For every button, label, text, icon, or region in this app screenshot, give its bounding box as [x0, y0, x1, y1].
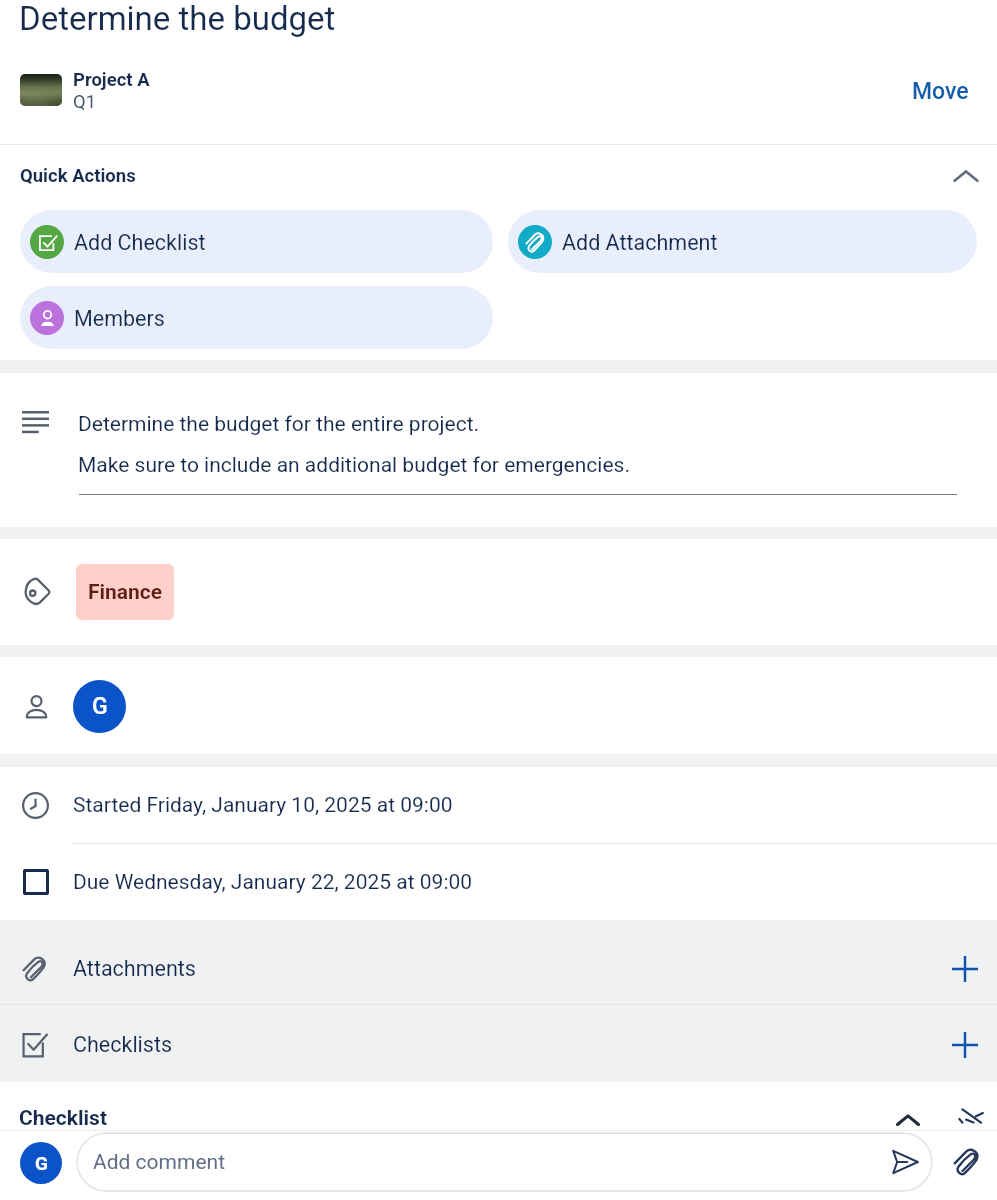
button[interactable]: Attachments — [0, 920, 997, 1004]
staticText: Quick Actions — [20, 165, 136, 187]
button[interactable]: Add comment — [76, 1132, 933, 1192]
staticText: Add Attachment — [562, 230, 718, 255]
staticText: Add comment — [93, 1150, 225, 1175]
button[interactable]: Checklists — [0, 1005, 997, 1082]
staticText: G — [35, 1152, 48, 1174]
staticText: Add Checklist — [74, 230, 206, 255]
button[interactable]: Add Attachment — [508, 210, 977, 273]
staticText: Checklists — [73, 1032, 173, 1057]
button[interactable]: G — [73, 680, 126, 733]
button[interactable]: Add Checklist — [20, 210, 493, 273]
button[interactable]: Send — [881, 1138, 929, 1186]
staticText: Due Wednesday, January 22, 2025 at 09:00 — [73, 870, 473, 895]
button[interactable]: Collapse checklist — [884, 1096, 932, 1144]
button[interactable]: Move — [900, 70, 981, 113]
staticText: Started Friday, January 10, 2025 at 09:0… — [73, 793, 453, 818]
button[interactable]: Hide checked items — [948, 1092, 996, 1140]
button[interactable]: Finance — [76, 564, 174, 620]
staticText: Move — [912, 78, 969, 105]
button[interactable]: Attach file — [943, 1138, 991, 1186]
staticText: Determine the budget for the entire proj… — [78, 412, 480, 437]
staticText: Q1 — [73, 91, 97, 113]
staticText: Project A — [73, 69, 150, 91]
staticText: G — [92, 693, 108, 720]
button[interactable]: Started Friday, January 10, 2025 at 09:0… — [0, 767, 997, 843]
staticText: Make sure to include an additional budge… — [78, 453, 630, 478]
staticText: Attachments — [73, 956, 196, 981]
button[interactable]: Add Checklists — [941, 1021, 989, 1069]
staticText: Members — [74, 306, 165, 331]
button[interactable]: Collapse Quick Actions — [942, 152, 990, 200]
button[interactable]: G — [20, 1142, 62, 1184]
button[interactable]: Due Wednesday, January 22, 2025 at 09:00 — [0, 844, 997, 920]
staticText: Finance — [88, 580, 163, 605]
staticText: Determine the budget — [19, 0, 336, 38]
button[interactable]: Members — [20, 286, 493, 349]
button[interactable]: Project A — [0, 56, 997, 144]
button[interactable]: Determine the budget for the entire proj… — [0, 373, 997, 527]
staticText: Checklist — [19, 1106, 108, 1131]
button[interactable]: Add Attachments — [941, 945, 989, 993]
